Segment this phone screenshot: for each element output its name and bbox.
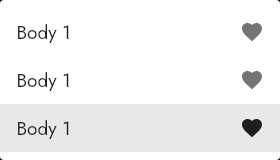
button[interactable]: Favorite [240,20,264,44]
button[interactable]: Body 1 [0,104,280,152]
button[interactable]: Body 1 [0,8,280,56]
staticText: Body 1 [16,67,71,94]
button[interactable]: Favorite [240,116,264,140]
staticText: Body 1 [16,115,71,142]
staticText: Body 1 [16,19,71,46]
button[interactable]: Favorite [240,68,264,92]
button[interactable]: Body 1 [0,56,280,104]
